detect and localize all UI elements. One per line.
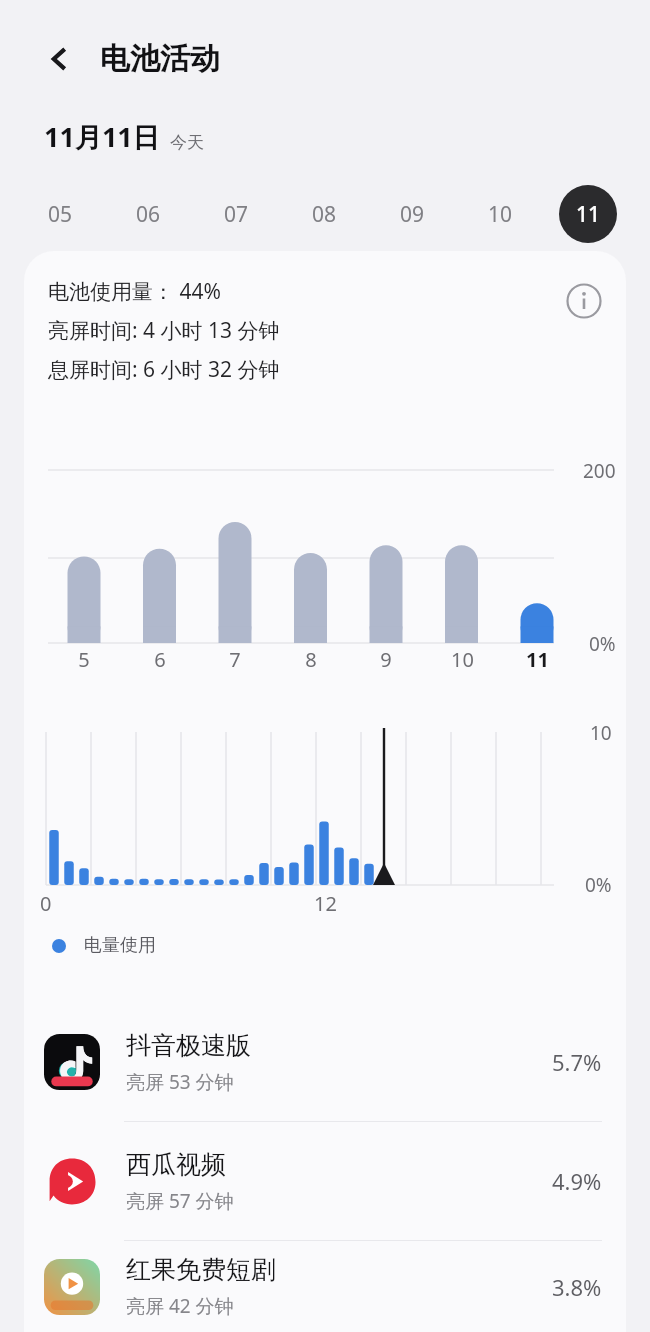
staticText: 5 [78,646,90,673]
staticText: 10 [590,720,612,746]
button[interactable]: 09 [383,185,441,243]
staticText: 08 [312,200,337,229]
staticText: 9 [380,646,392,673]
button[interactable]: Information [560,277,608,325]
staticText: 09 [400,200,425,229]
button[interactable]: 05 [31,185,89,243]
staticText: 11 [526,646,549,673]
staticText: 西瓜视频 [126,1149,226,1180]
button[interactable]: 抖音极速版 [24,1003,626,1121]
staticText: 05 [48,200,73,229]
button[interactable]: 10 [471,185,529,243]
staticText: 0% [589,631,616,657]
staticText: 5.7% [552,1047,602,1077]
button[interactable]: 红果免费短剧 [24,1241,626,1332]
staticText: 亮屏 57 分钟 [126,1188,234,1214]
button[interactable]: 11 [559,185,617,243]
staticText: 0 [40,890,52,917]
staticText: 12 [314,890,337,917]
staticText: 07 [224,200,249,229]
staticText: 亮屏 42 分钟 [126,1293,234,1319]
staticText: 亮屏 53 分钟 [126,1069,234,1095]
staticText: 红果免费短剧 [126,1254,276,1285]
staticText: 11月11日 [44,118,160,155]
staticText: 3.8% [552,1272,602,1302]
button[interactable]: 08 [295,185,353,243]
button[interactable]: 06 [119,185,177,243]
staticText: 息屏时间: 6 小时 32 分钟 [48,355,280,384]
button[interactable]: Back [34,33,86,85]
staticText: 10 [488,200,513,229]
staticText: 10 [451,646,474,673]
staticText: 7 [229,646,241,673]
staticText: 6 [154,646,166,673]
staticText: 今天 [170,132,204,153]
staticText: 200 [583,458,616,484]
staticText: 亮屏时间: 4 小时 13 分钟 [48,316,280,345]
staticText: 抖音极速版 [126,1030,251,1061]
button[interactable]: 07 [207,185,265,243]
staticText: 11 [576,200,601,229]
staticText: 8 [305,646,317,673]
staticText: 电池活动 [100,40,220,78]
staticText: 电量使用 [84,934,156,957]
button[interactable]: 西瓜视频 [24,1122,626,1240]
staticText: 06 [136,200,161,229]
staticText: 电池使用量： 44% [48,277,221,306]
staticText: 4.9% [552,1166,602,1196]
staticText: 0% [585,872,612,898]
